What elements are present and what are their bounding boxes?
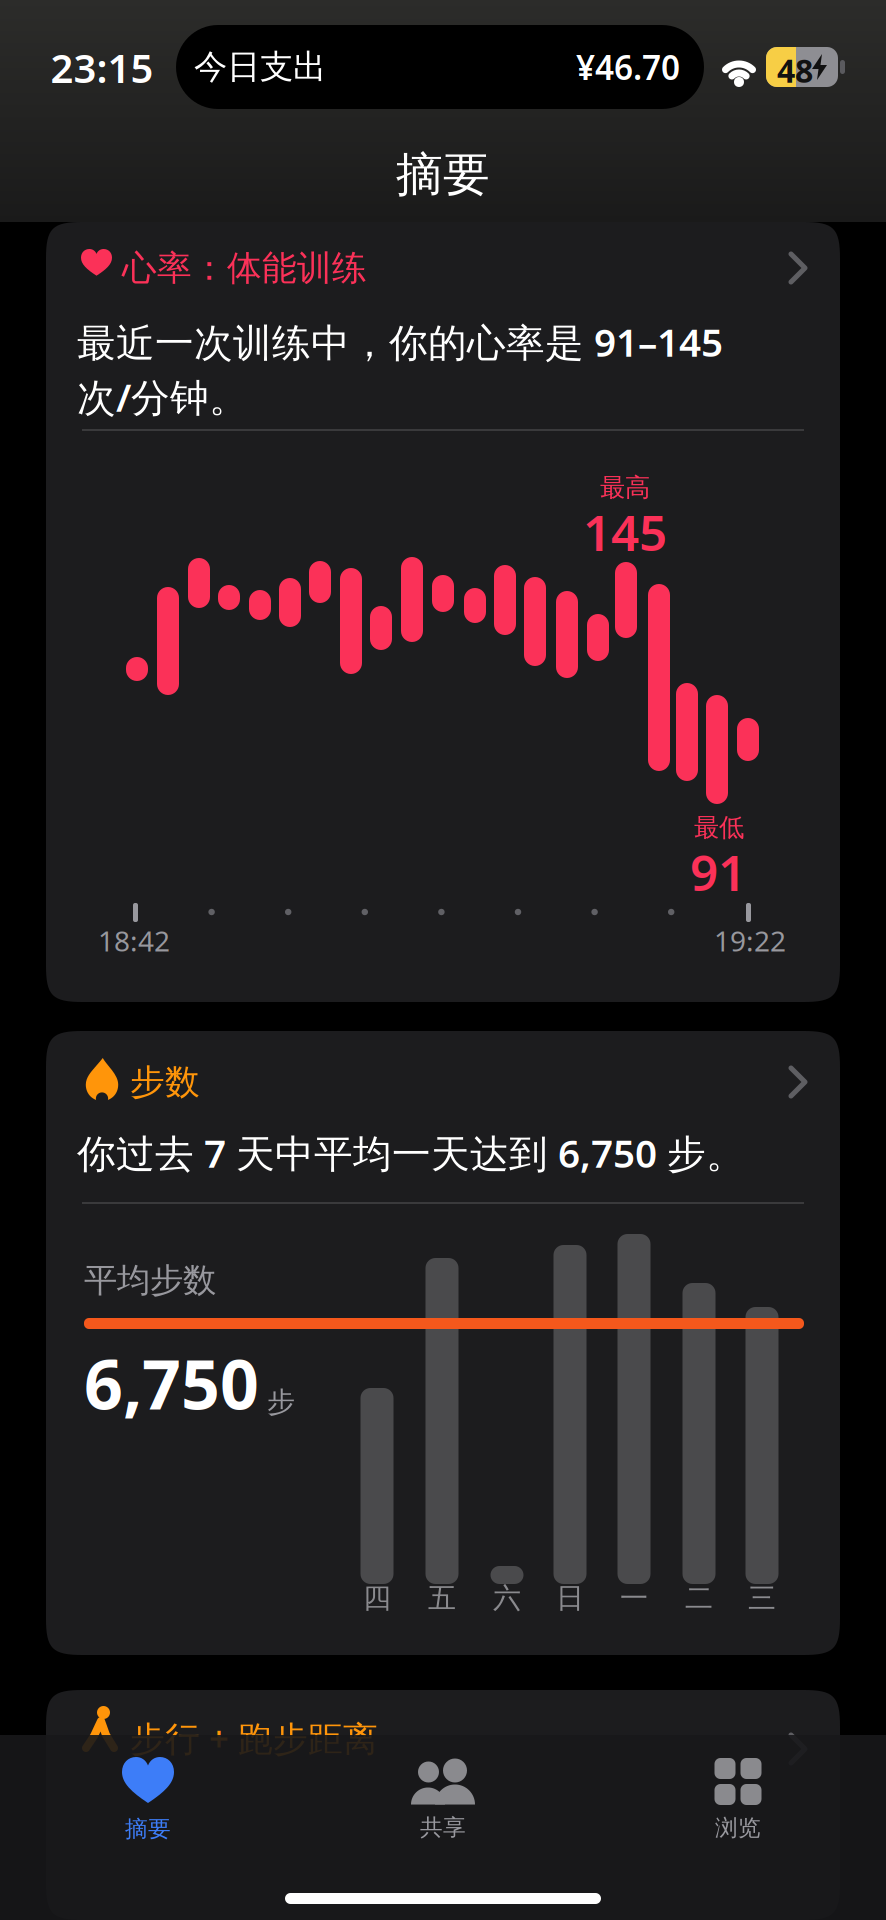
staticText: 6,750	[84, 1338, 259, 1428]
button[interactable]: 步行 + 跑步距离	[46, 1690, 840, 1920]
button[interactable]: 浏览	[590, 1758, 885, 1842]
button[interactable]: 今日支出	[176, 25, 704, 109]
staticText: 48	[777, 49, 813, 91]
staticText: 三	[748, 1581, 776, 1615]
staticText: 你过去 7 天中平均一天达到 6,750 步。	[77, 1127, 745, 1178]
button[interactable]: 心率：体能训练	[46, 222, 840, 1002]
staticText: 次/分钟。	[77, 371, 248, 422]
staticText: 共享	[420, 1813, 466, 1841]
staticText: 心率：体能训练	[122, 247, 367, 290]
staticText: 摘要	[125, 1815, 171, 1843]
staticText: 今日支出	[194, 46, 326, 87]
staticText: 18:42	[98, 922, 170, 959]
staticText: 最近一次训练中，你的心率是 91–145	[77, 316, 723, 367]
staticText: 日	[556, 1581, 584, 1615]
staticText: 平均步数	[84, 1260, 216, 1301]
staticText: 19:22	[714, 922, 786, 959]
staticText: 23:15	[50, 41, 153, 94]
staticText: 145	[583, 499, 667, 564]
staticText: 四	[363, 1581, 391, 1615]
staticText: 最高	[600, 472, 650, 503]
staticText: 六	[493, 1581, 521, 1615]
staticText: 一	[620, 1581, 648, 1615]
staticText: 浏览	[715, 1814, 761, 1842]
button[interactable]: 步数	[46, 1031, 840, 1655]
staticText: 二	[685, 1581, 713, 1615]
staticText: 91	[690, 839, 746, 904]
staticText: 步	[267, 1385, 295, 1419]
staticText: 最低	[694, 812, 744, 843]
staticText: ¥46.70	[576, 45, 680, 89]
staticText: 步数	[130, 1061, 200, 1104]
button[interactable]: 共享	[295, 1758, 590, 1841]
staticText: 摘要	[396, 146, 490, 203]
staticText: 步行 + 跑步距离	[130, 1715, 378, 1761]
staticText: 五	[428, 1581, 456, 1615]
button[interactable]: 摘要	[0, 1757, 295, 1843]
